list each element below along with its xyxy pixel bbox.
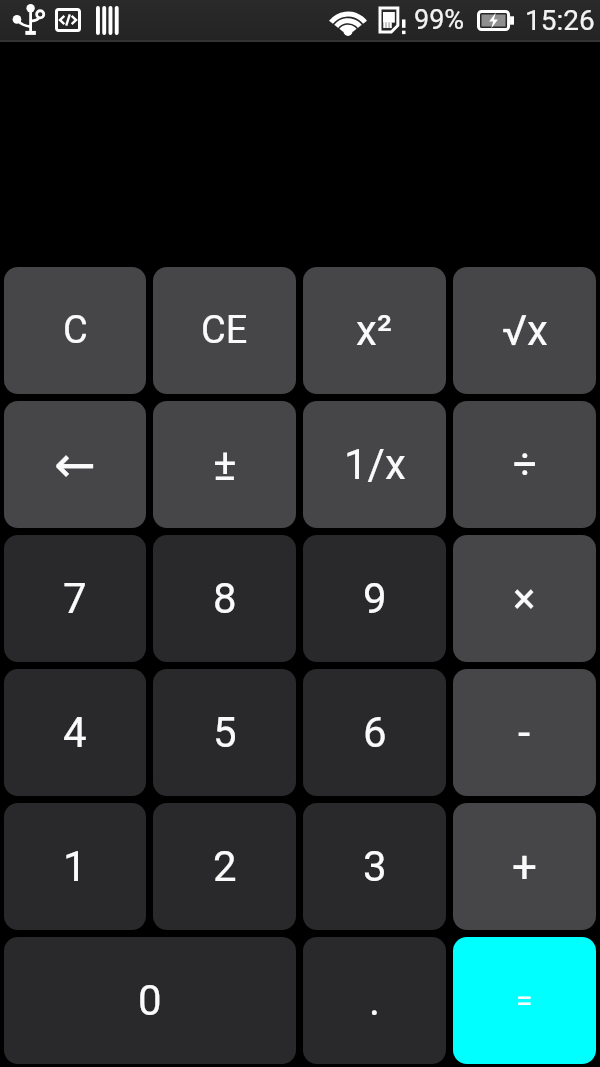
staticText: - [518,707,531,759]
button[interactable]: CE [153,267,296,394]
button[interactable]: 2 [153,803,296,930]
staticText: 4 [63,708,87,757]
staticText: 0 [138,976,162,1025]
button[interactable]: ÷ [453,401,596,528]
button[interactable]: = [453,937,596,1064]
staticText: + [512,841,537,893]
staticText: 3 [363,842,387,891]
button[interactable]: 9 [303,535,446,662]
button[interactable]: C [4,267,146,394]
staticText: 1/x [344,440,406,489]
staticText: ÷ [513,440,537,489]
staticText: 2 [213,842,237,891]
staticText: × [513,574,536,623]
button[interactable]: 3 [303,803,446,930]
staticText: = [516,983,533,1018]
button[interactable]: x² [303,267,446,394]
button[interactable]: 8 [153,535,296,662]
staticText: 6 [363,708,387,757]
button[interactable]: ← [4,401,146,528]
button[interactable]: ± [153,401,296,528]
button[interactable]: 6 [303,669,446,796]
button[interactable]: 0 [4,937,296,1064]
staticText: √x [502,306,548,355]
staticText: 99% [414,4,465,36]
button[interactable]: 4 [4,669,146,796]
staticText: 1 [63,842,87,891]
staticText: ← [54,436,96,494]
button[interactable]: 7 [4,535,146,662]
staticText: 7 [63,574,87,623]
staticText: C [63,308,88,353]
button[interactable]: × [453,535,596,662]
button[interactable]: 1/x [303,401,446,528]
button[interactable]: 5 [153,669,296,796]
staticText: x² [356,306,393,355]
staticText: 5 [213,708,237,757]
staticText: ± [213,439,237,491]
button[interactable]: + [453,803,596,930]
staticText: 8 [213,574,237,623]
button[interactable]: - [453,669,596,796]
staticText: 15:26 [525,4,595,37]
button[interactable]: 1 [4,803,146,930]
staticText: CE [201,308,248,353]
staticText: 9 [363,574,387,623]
staticText: . [369,976,381,1025]
button[interactable]: . [303,937,446,1064]
button[interactable]: √x [453,267,596,394]
